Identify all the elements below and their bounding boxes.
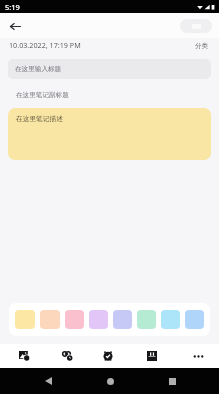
button[interactable]: Recent apps [161, 370, 183, 392]
button[interactable]: Colour [65, 310, 84, 329]
button[interactable]: Back [3, 14, 27, 38]
button[interactable]: Colour [15, 310, 35, 329]
button[interactable]: Save [141, 345, 163, 367]
button[interactable]: Add image [13, 345, 35, 367]
button[interactable]: Reminder [97, 345, 119, 367]
button[interactable]: Back [37, 370, 59, 392]
button[interactable]: Colour [185, 310, 204, 329]
button[interactable]: Colour [161, 310, 180, 329]
button[interactable]: Mode [180, 19, 212, 33]
button[interactable]: 分类 [194, 39, 210, 51]
staticText: 在这里笔记副标题 [16, 91, 69, 99]
staticText: 5:19 [5, 2, 20, 12]
button[interactable]: Colour [137, 310, 156, 329]
button[interactable]: More options [187, 345, 209, 367]
staticText: 在这里输入标题 [15, 65, 62, 73]
button[interactable]: 在这里输入标题 [8, 59, 211, 79]
button[interactable]: Colour [113, 310, 132, 329]
button[interactable]: Link [56, 345, 78, 367]
button[interactable]: 在这里笔记描述 [8, 108, 211, 160]
button[interactable]: Colour [40, 310, 60, 329]
staticText: 分类 [195, 42, 209, 50]
button[interactable]: Home [99, 370, 121, 392]
button[interactable]: Colour [89, 310, 108, 329]
staticText: 在这里笔记描述 [16, 115, 63, 123]
staticText: 10.03.2022, 17:19 PM [9, 40, 81, 50]
